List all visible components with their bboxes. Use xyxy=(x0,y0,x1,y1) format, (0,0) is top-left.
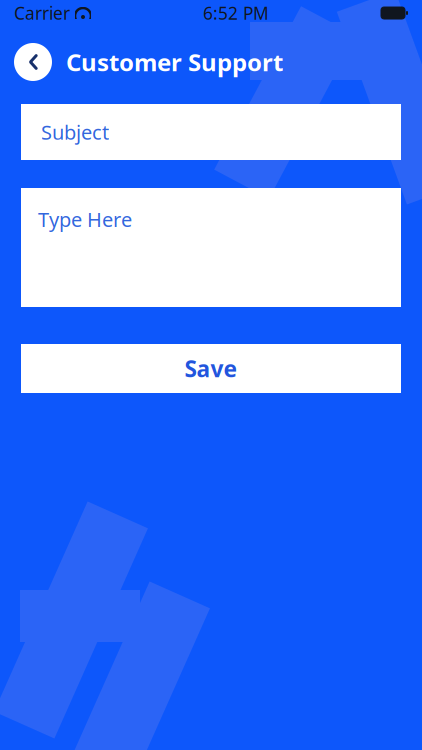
staticText: Customer Support xyxy=(66,46,283,78)
staticText: Subject xyxy=(41,119,109,145)
button[interactable]: Save xyxy=(21,344,401,393)
staticText: Save xyxy=(184,353,237,383)
staticText: Carrier xyxy=(14,1,70,24)
button[interactable]: Back xyxy=(14,43,52,81)
staticText: Type Here xyxy=(38,206,132,233)
staticText: 6:52 PM xyxy=(203,1,269,24)
button[interactable]: Subject xyxy=(21,104,401,160)
button[interactable]: Type Here xyxy=(21,188,401,307)
